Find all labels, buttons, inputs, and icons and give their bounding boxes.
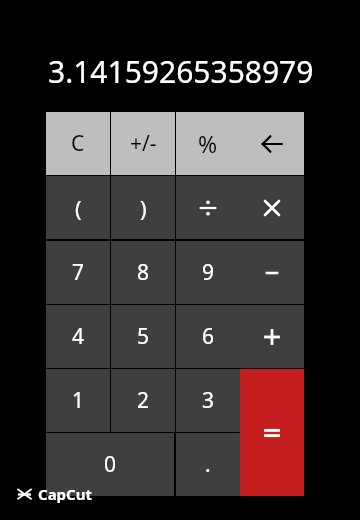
staticText: ) [140,193,147,223]
staticText: % [198,128,218,159]
button[interactable]: 0 [46,433,174,496]
staticText: 3.14159265358979 [48,51,314,92]
staticText: C [71,129,85,158]
staticText: 7 [72,258,85,287]
staticText: 6 [202,322,215,351]
button[interactable]: 5 [111,305,175,368]
button[interactable]: 2 [111,369,175,432]
button[interactable]: Plus minus [111,112,175,175]
button[interactable]: 9 [176,241,240,304]
button[interactable]: 7 [46,241,110,304]
button[interactable]: Equals [240,369,304,496]
button[interactable]: 1 [46,369,110,432]
staticText: CapCut [38,484,92,504]
button[interactable]: Open paren [46,176,110,239]
staticText: 9 [202,258,215,287]
staticText: +/- [130,129,157,158]
button[interactable]: Plus [240,305,304,368]
button[interactable]: 6 [176,305,240,368]
button[interactable]: 8 [111,241,175,304]
button[interactable]: Clear [46,112,110,175]
staticText: 5 [137,322,150,351]
staticText: 2 [137,386,150,415]
button[interactable]: Percent [176,112,240,175]
staticText: 3 [202,386,215,415]
staticText: . [205,450,211,479]
button[interactable]: Multiply [240,176,304,239]
staticText: 0 [104,450,117,479]
button[interactable]: Divide [176,176,240,239]
button[interactable]: Backspace [240,112,304,175]
staticText: 1 [72,386,85,415]
button[interactable]: Close paren [111,176,175,239]
button[interactable]: . [176,433,240,496]
button[interactable]: 3 [176,369,240,432]
button[interactable]: 4 [46,305,110,368]
button[interactable]: Minus [240,241,304,304]
staticText: ( [75,193,82,223]
staticText: 4 [72,322,85,351]
staticText: 8 [137,258,150,287]
